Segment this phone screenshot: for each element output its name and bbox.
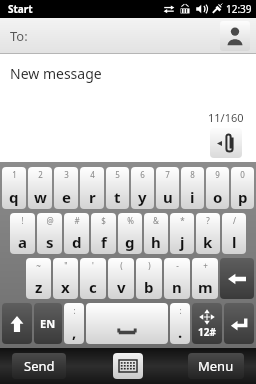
- staticText: (: [120, 260, 123, 271]
- staticText: 12:39: [226, 2, 252, 16]
- button[interactable]: New message: [10, 64, 102, 83]
- staticText: Start: [8, 2, 33, 16]
- button[interactable]: 7: [156, 167, 179, 209]
- staticText: ,: [72, 322, 77, 342]
- staticText: q: [9, 187, 19, 207]
- button[interactable]: 0: [231, 167, 254, 209]
- staticText: n: [172, 277, 182, 297]
- staticText: ': [92, 260, 94, 271]
- staticText: :: [73, 305, 76, 316]
- button[interactable]: 6: [131, 167, 154, 209]
- button[interactable]: 1: [2, 167, 26, 209]
- staticText: +: [203, 260, 208, 271]
- button[interactable]: ): [136, 258, 162, 299]
- staticText: p: [238, 187, 248, 207]
- button[interactable]: !: [10, 213, 35, 254]
- button[interactable]: ?: [196, 213, 220, 254]
- button[interactable]: &: [144, 213, 168, 254]
- staticText: .: [178, 322, 183, 342]
- staticText: g: [125, 232, 135, 252]
- button[interactable]: Pick contact: [220, 21, 250, 51]
- button[interactable]: -: [164, 258, 190, 299]
- staticText: 2: [38, 169, 43, 180]
- staticText: 4: [90, 169, 95, 180]
- staticText: To:: [10, 27, 28, 45]
- staticText: 7: [165, 169, 170, 180]
- button[interactable]: 2: [28, 167, 52, 209]
- button[interactable]: 9: [206, 167, 229, 209]
- staticText: ): [148, 260, 151, 271]
- staticText: !: [21, 215, 24, 226]
- button[interactable]: 4: [80, 167, 104, 209]
- staticText: EN: [40, 316, 56, 331]
- staticText: f: [101, 232, 107, 252]
- staticText: :: [179, 305, 182, 316]
- button[interactable]: 12#: [192, 303, 222, 344]
- button[interactable]: ~: [26, 258, 51, 299]
- staticText: z: [35, 277, 43, 297]
- staticText: v: [117, 277, 126, 297]
- button[interactable]: /: [222, 213, 246, 254]
- staticText: a: [18, 232, 27, 252]
- staticText: ?: [206, 215, 210, 226]
- staticText: w: [34, 187, 47, 207]
- staticText: 0: [240, 169, 245, 180]
- staticText: 6: [140, 169, 145, 180]
- staticText: l: [232, 232, 237, 252]
- button[interactable]: (: [108, 258, 134, 299]
- staticText: *: [180, 215, 185, 226]
- button[interactable]: Backspace: [220, 258, 254, 299]
- button[interactable]: Space: [86, 303, 168, 344]
- staticText: r: [89, 187, 96, 207]
- staticText: Menu: [198, 357, 234, 375]
- staticText: e: [62, 187, 71, 207]
- staticText: c: [89, 277, 97, 297]
- staticText: 9: [215, 169, 220, 180]
- button[interactable]: Enter: [224, 303, 254, 344]
- button[interactable]: :: [64, 303, 84, 344]
- button[interactable]: Send: [12, 353, 66, 379]
- staticText: /: [233, 215, 236, 226]
- staticText: $: [101, 215, 106, 226]
- button[interactable]: Attach: [210, 128, 242, 158]
- staticText: Send: [24, 357, 55, 375]
- button[interactable]: Shift: [2, 303, 32, 344]
- staticText: j: [180, 232, 185, 252]
- button[interactable]: EN: [34, 303, 62, 344]
- staticText: 1: [12, 169, 17, 180]
- staticText: ~: [36, 260, 41, 271]
- staticText: o: [213, 187, 223, 207]
- button[interactable]: :: [170, 303, 190, 344]
- staticText: s: [46, 232, 54, 252]
- button[interactable]: Keyboard: [113, 353, 143, 379]
- button[interactable]: Menu: [188, 353, 244, 379]
- button[interactable]: +: [192, 258, 218, 299]
- button[interactable]: *: [170, 213, 194, 254]
- staticText: 3: [64, 169, 69, 180]
- button[interactable]: #: [64, 213, 89, 254]
- staticText: x: [61, 277, 70, 297]
- staticText: h: [151, 232, 161, 252]
- button[interactable]: $: [91, 213, 116, 254]
- staticText: i: [190, 187, 195, 207]
- button[interactable]: 3: [54, 167, 78, 209]
- button[interactable]: %: [118, 213, 142, 254]
- staticText: u: [163, 187, 173, 207]
- staticText: 11/160: [208, 110, 244, 125]
- staticText: @: [46, 215, 54, 226]
- staticText: ": [64, 260, 68, 271]
- staticText: m: [198, 277, 213, 297]
- button[interactable]: To:: [0, 18, 256, 54]
- staticText: 8: [190, 169, 195, 180]
- button[interactable]: ': [80, 258, 106, 299]
- button[interactable]: 5: [106, 167, 129, 209]
- staticText: d: [72, 232, 82, 252]
- staticText: #: [74, 215, 80, 226]
- button[interactable]: @: [37, 213, 62, 254]
- staticText: -: [176, 260, 179, 271]
- staticText: &: [153, 215, 159, 226]
- button[interactable]: 8: [181, 167, 204, 209]
- staticText: 5: [115, 169, 120, 180]
- staticText: b: [144, 277, 154, 297]
- button[interactable]: ": [53, 258, 78, 299]
